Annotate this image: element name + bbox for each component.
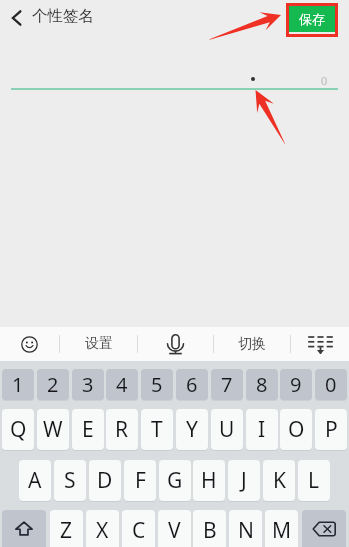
staticText: 设置 [85, 335, 113, 353]
button[interactable]: B [193, 510, 226, 547]
staticText: M [272, 516, 292, 545]
staticText: 个性签名 [32, 6, 94, 26]
staticText: L [308, 466, 320, 495]
button[interactable]: N [229, 510, 262, 547]
staticText: P [325, 415, 338, 444]
button[interactable]: Hide keyboard [291, 327, 349, 361]
button[interactable]: D [89, 460, 121, 501]
staticText: F [135, 466, 146, 495]
staticText: 3 [82, 371, 94, 398]
button[interactable]: R [106, 409, 138, 450]
other: Emoji [21, 336, 38, 353]
button[interactable]: S [54, 460, 86, 501]
staticText: O [288, 415, 305, 444]
staticText: X [96, 516, 109, 545]
staticText: 0 [321, 73, 328, 88]
staticText: V [168, 516, 181, 545]
staticText: 0 [325, 371, 337, 398]
button[interactable]: H [193, 460, 225, 501]
staticText: C [132, 516, 146, 545]
staticText: Q [10, 415, 27, 444]
staticText: 切换 [238, 335, 266, 353]
button[interactable]: Backspace [302, 510, 346, 547]
staticText: 7 [221, 371, 233, 398]
other: Voice input [166, 334, 185, 355]
staticText: 2 [47, 371, 59, 398]
staticText: 9 [290, 371, 302, 398]
staticText: D [97, 466, 113, 495]
button[interactable]: Shift [2, 510, 46, 547]
button[interactable]: Q [2, 409, 34, 450]
button[interactable]: G [159, 460, 191, 501]
button[interactable]: T [141, 409, 173, 450]
button[interactable]: F [124, 460, 156, 501]
button[interactable]: 3 [72, 369, 104, 400]
button[interactable]: W [37, 409, 69, 450]
button[interactable]: Back [1, 0, 32, 32]
button[interactable]: 9 [280, 369, 312, 400]
button[interactable]: X [86, 510, 119, 547]
button[interactable]: 5 [141, 369, 173, 400]
staticText: W [43, 415, 63, 444]
button[interactable]: Y [176, 409, 208, 450]
staticText: 6 [186, 371, 198, 398]
button[interactable]: 保存 [289, 6, 335, 32]
button[interactable]: 1 [2, 369, 34, 400]
button[interactable]: O [280, 409, 312, 450]
button[interactable]: 切换 [214, 327, 290, 361]
button[interactable]: 6 [176, 369, 208, 400]
staticText: B [203, 516, 217, 545]
staticText: Y [186, 415, 198, 444]
other: Hide keyboard [308, 335, 333, 354]
button[interactable]: 设置 [60, 327, 137, 361]
button[interactable]: 8 [246, 369, 278, 400]
staticText: I [258, 415, 266, 444]
staticText: 4 [116, 371, 128, 398]
staticText: 8 [256, 371, 268, 398]
button[interactable]: L [298, 460, 330, 501]
button[interactable]: C [122, 510, 155, 547]
button[interactable]: Z [50, 510, 83, 547]
button[interactable]: I [246, 409, 278, 450]
button[interactable]: K [263, 460, 295, 501]
button[interactable]: 0 [315, 369, 347, 400]
button[interactable]: 7 [211, 369, 243, 400]
staticText: R [115, 415, 129, 444]
staticText: 5 [151, 371, 163, 398]
button[interactable]: 2 [37, 369, 69, 400]
staticText: S [64, 466, 76, 495]
staticText: U [219, 415, 235, 444]
staticText: K [273, 466, 286, 495]
button[interactable]: Emoji [0, 327, 59, 361]
staticText: J [241, 466, 247, 495]
button[interactable]: A [19, 460, 51, 501]
button[interactable]: U [211, 409, 243, 450]
staticText: N [238, 516, 254, 545]
button[interactable]: V [158, 510, 191, 547]
staticText: H [201, 466, 217, 495]
staticText: 1 [12, 371, 24, 398]
staticText: T [151, 415, 163, 444]
staticText: Z [60, 516, 73, 545]
staticText: E [82, 415, 94, 444]
button[interactable]: 4 [106, 369, 138, 400]
staticText: G [167, 466, 183, 495]
button[interactable]: J [228, 460, 260, 501]
staticText: A [28, 466, 42, 495]
button[interactable]: P [315, 409, 347, 450]
button[interactable]: E [72, 409, 104, 450]
button[interactable]: M [265, 510, 298, 547]
button[interactable]: Voice input [138, 327, 213, 361]
staticText: 保存 [299, 11, 325, 27]
